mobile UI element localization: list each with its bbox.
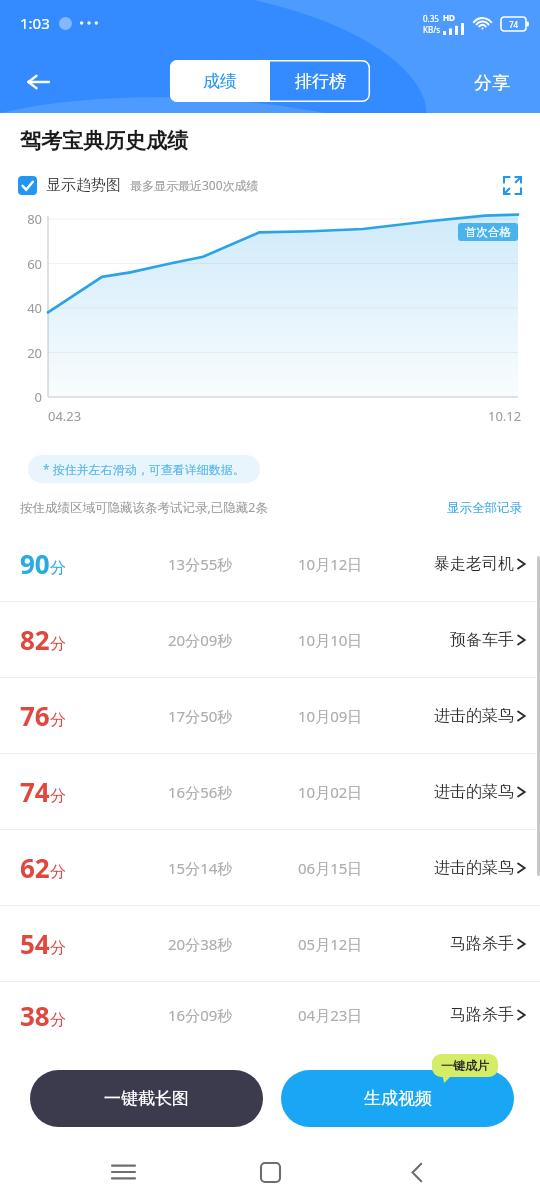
staticText: 显示全部记录 (447, 500, 522, 516)
staticText: 10.12 (488, 407, 522, 425)
staticText: 13分55秒 (168, 554, 233, 574)
button[interactable]: Recents (99, 1148, 147, 1196)
staticText: 62 (20, 850, 50, 885)
staticText: 排行榜 (295, 71, 346, 92)
staticText: 进击的菜鸟 (434, 706, 514, 726)
staticText: 分 (50, 634, 66, 654)
staticText: 04.23 (48, 407, 82, 425)
button[interactable]: Back (393, 1148, 441, 1196)
staticText: 马路杀手 (450, 934, 514, 954)
button[interactable]: 分享 (474, 72, 510, 95)
staticText: 暴走老司机 (434, 554, 514, 574)
button[interactable]: 排行榜 (270, 60, 370, 102)
staticText: * 按住并左右滑动，可查看详细数据。 (43, 461, 245, 477)
staticText: 一键截长图 (104, 1088, 189, 1109)
staticText: 0.35 (423, 13, 439, 24)
button[interactable]: Back (16, 60, 60, 104)
staticText: 进击的菜鸟 (434, 782, 514, 802)
staticText: 04月23日 (298, 1005, 363, 1025)
button[interactable]: 54 (0, 906, 540, 981)
staticText: KB/s (423, 24, 440, 35)
staticText: 首次合格 (465, 225, 511, 239)
staticText: 74 (509, 19, 519, 30)
staticText: 82 (20, 622, 50, 657)
staticText: 17分50秒 (168, 706, 233, 726)
button[interactable]: Fullscreen (496, 169, 528, 201)
staticText: 80 (16, 210, 42, 228)
button[interactable]: 82 (0, 602, 540, 677)
staticText: 40 (16, 299, 42, 317)
staticText: 20分09秒 (168, 630, 233, 650)
staticText: 10月10日 (298, 630, 363, 650)
staticText: 进击的菜鸟 (434, 858, 514, 878)
button[interactable]: 74 (0, 754, 540, 829)
button[interactable]: Home (246, 1148, 294, 1196)
staticText: 显示趋势图 (46, 176, 121, 195)
staticText: 预备车手 (450, 630, 514, 650)
staticText: HD (443, 12, 455, 23)
staticText: 生成视频 (364, 1088, 432, 1109)
staticText: 76 (20, 698, 50, 733)
staticText: 16分56秒 (168, 782, 233, 802)
staticText: 15分14秒 (168, 858, 233, 878)
button[interactable]: 一键截长图 (30, 1070, 263, 1127)
staticText: 38 (20, 998, 50, 1033)
button[interactable]: 90 (0, 526, 540, 601)
button[interactable]: 成绩 (170, 60, 270, 102)
staticText: 驾考宝典历史成绩 (20, 128, 188, 154)
staticText: 74 (20, 774, 50, 809)
staticText: 54 (20, 926, 50, 961)
staticText: 最多显示最近300次成绩 (130, 177, 259, 193)
staticText: 一键成片 (441, 1058, 489, 1073)
staticText: 60 (16, 255, 42, 273)
staticText: 成绩 (203, 71, 237, 92)
staticText: 05月12日 (298, 934, 363, 954)
button[interactable]: 显示趋势图 (18, 176, 121, 195)
staticText: 16分09秒 (168, 1005, 233, 1025)
staticText: 1:03 (20, 13, 50, 33)
staticText: 分 (50, 710, 66, 730)
staticText: 06月15日 (298, 858, 363, 878)
staticText: 20 (16, 344, 42, 362)
staticText: 分 (50, 558, 66, 578)
staticText: 分 (50, 862, 66, 882)
staticText: 20分38秒 (168, 934, 233, 954)
staticText: 10月09日 (298, 706, 363, 726)
staticText: 马路杀手 (450, 1005, 514, 1025)
staticText: 10月02日 (298, 782, 363, 802)
staticText: 按住成绩区域可隐藏该条考试记录,已隐藏2条 (20, 499, 269, 516)
staticText: 90 (20, 546, 50, 581)
button[interactable]: 76 (0, 678, 540, 753)
staticText: 0 (16, 388, 42, 406)
staticText: 分 (50, 786, 66, 806)
button[interactable]: 生成视频 (281, 1070, 514, 1127)
staticText: 分享 (474, 72, 510, 95)
button[interactable]: 62 (0, 830, 540, 905)
staticText: 分 (50, 1010, 66, 1030)
button[interactable]: 显示全部记录 (447, 500, 522, 516)
staticText: 10月12日 (298, 554, 363, 574)
staticText: 分 (50, 938, 66, 958)
button[interactable]: 38 (0, 982, 540, 1048)
